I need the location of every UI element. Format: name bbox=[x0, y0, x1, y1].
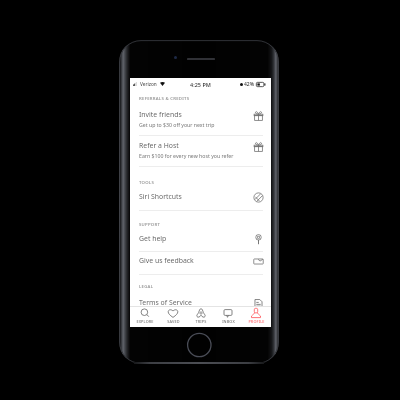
other: Terms of Service bbox=[253, 298, 264, 309]
staticText: Refer a Host bbox=[139, 141, 179, 150]
other: Gift bbox=[253, 141, 264, 152]
staticText: SUPPORT bbox=[139, 221, 161, 227]
staticText: EXPLORE bbox=[136, 319, 154, 324]
staticText: Earn $100 for every new host you refer bbox=[139, 152, 234, 159]
staticText: Invite friends bbox=[139, 110, 182, 119]
staticText: 4:25 PM bbox=[190, 81, 211, 88]
staticText: TRIPS bbox=[195, 319, 207, 324]
button[interactable]: Give us feedback bbox=[130, 256, 271, 270]
button[interactable]: INBOX bbox=[215, 307, 241, 327]
staticText: 42% bbox=[244, 81, 255, 88]
staticText: Siri Shortcuts bbox=[139, 192, 182, 201]
staticText: Give us feedback bbox=[139, 256, 194, 265]
button[interactable]: PROFILE bbox=[243, 307, 269, 327]
other: Siri Shortcuts bbox=[253, 192, 264, 203]
staticText: SAVED bbox=[167, 319, 180, 324]
other: Give us feedback bbox=[253, 256, 264, 267]
button[interactable]: Invite friends bbox=[130, 110, 271, 132]
staticText: Get help bbox=[139, 234, 167, 243]
staticText: Verizon bbox=[140, 81, 157, 87]
staticText: INBOX bbox=[222, 319, 235, 324]
staticText: PROFILE bbox=[248, 319, 265, 324]
button[interactable]: Get help bbox=[130, 234, 271, 248]
button[interactable]: Refer a Host bbox=[130, 141, 271, 163]
staticText: TOOLS bbox=[139, 179, 155, 185]
staticText: Get up to $30 off your next trip bbox=[139, 121, 215, 128]
button[interactable]: TRIPS bbox=[188, 307, 214, 327]
button[interactable]: Siri Shortcuts bbox=[130, 192, 271, 206]
staticText: LEGAL bbox=[139, 283, 154, 289]
button[interactable]: Terms of Service bbox=[130, 298, 271, 312]
button[interactable]: EXPLORE bbox=[132, 307, 158, 327]
staticText: REFERRALS & CREDITS bbox=[139, 95, 190, 101]
other: Gift bbox=[253, 110, 264, 121]
button[interactable]: SAVED bbox=[160, 307, 186, 327]
other: Get help bbox=[253, 234, 264, 245]
staticText: Terms of Service bbox=[139, 298, 192, 307]
